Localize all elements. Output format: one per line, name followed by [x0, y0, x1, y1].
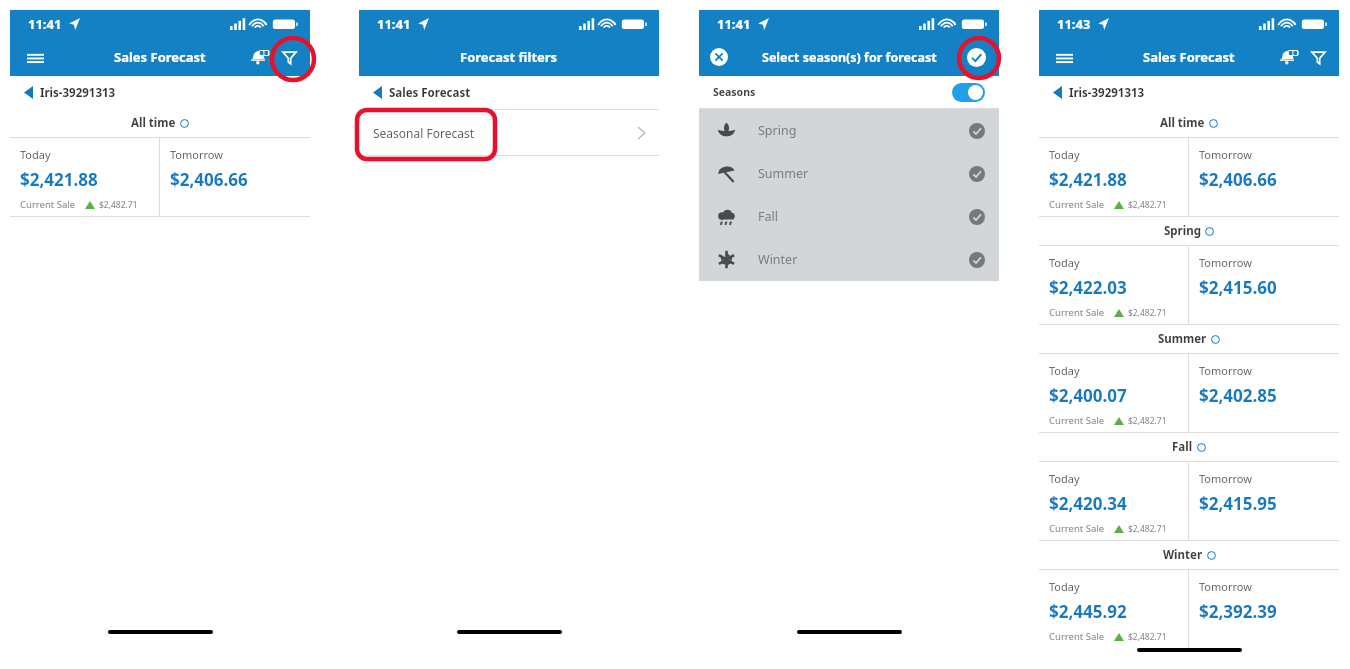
button[interactable]: Help	[1205, 227, 1214, 236]
staticText: Fall	[758, 208, 778, 225]
button[interactable]: Today	[1039, 246, 1188, 324]
staticText: $2,421.88	[20, 168, 98, 191]
button[interactable]: Seasons	[699, 76, 999, 108]
staticText: Seasonal Forecast	[373, 125, 475, 141]
staticText: 11:41	[717, 15, 751, 33]
staticText: Tomorrow	[170, 147, 223, 162]
staticText: Seasons	[713, 85, 756, 99]
button[interactable]: Winter	[699, 238, 999, 281]
button[interactable]: Spring	[699, 109, 999, 152]
staticText: Forecast filters	[460, 48, 558, 66]
staticText: Current Sale	[1049, 630, 1105, 643]
staticText: Sales Forecast	[1143, 48, 1235, 66]
staticText: $2,482.71	[1128, 523, 1167, 535]
staticText: $2,445.92	[1049, 600, 1127, 623]
staticText: 11:41	[377, 15, 411, 33]
staticText: $2,400.07	[1049, 384, 1127, 407]
button[interactable]: Help	[1211, 335, 1220, 344]
staticText: Tomorrow	[1199, 147, 1252, 162]
button[interactable]: Notifications	[244, 42, 274, 72]
staticText: Iris-39291313	[40, 85, 116, 101]
button[interactable]: Help	[1207, 551, 1216, 560]
staticText: Fall	[1172, 439, 1193, 455]
staticText: Select season(s) for forecast	[762, 49, 937, 66]
button[interactable]: Summer	[699, 152, 999, 195]
button[interactable]: Today	[1039, 570, 1188, 648]
staticText: All time	[1160, 115, 1205, 131]
button[interactable]: Menu	[18, 40, 52, 74]
button[interactable]: Today	[1039, 354, 1188, 432]
button[interactable]: Close	[704, 42, 734, 72]
staticText: 11:41	[28, 15, 62, 33]
staticText: $2,402.85	[1199, 384, 1277, 407]
staticText: $2,415.95	[1199, 492, 1277, 515]
staticText: Sales Forecast	[114, 48, 206, 66]
button[interactable]	[952, 83, 985, 102]
staticText: Today	[1049, 579, 1080, 594]
staticText: Current Sale	[1049, 414, 1105, 427]
staticText: Summer	[1158, 331, 1207, 347]
staticText: Sales Forecast	[389, 85, 471, 101]
staticText: Current Sale	[1049, 306, 1105, 319]
staticText: Current Sale	[1049, 198, 1105, 211]
staticText: Tomorrow	[1199, 471, 1252, 486]
button[interactable]: Tomorrow	[1189, 462, 1339, 540]
staticText: Today	[1049, 255, 1080, 270]
staticText: Today	[1049, 471, 1080, 486]
button[interactable]: Sales Forecast	[359, 76, 659, 109]
button[interactable]: Today	[1039, 462, 1188, 540]
staticText: Summer	[758, 165, 809, 182]
button[interactable]: Tomorrow	[1189, 138, 1339, 216]
staticText: $2,415.60	[1199, 276, 1277, 299]
button[interactable]: Help	[1197, 443, 1206, 452]
button[interactable]: Tomorrow	[1189, 246, 1339, 324]
button[interactable]: Menu	[1047, 40, 1081, 74]
button[interactable]: Today	[1039, 138, 1188, 216]
staticText: Winter	[1163, 547, 1203, 563]
staticText: Spring	[1164, 223, 1201, 239]
button[interactable]: Confirm	[961, 42, 991, 72]
button[interactable]: Filter	[1303, 42, 1333, 72]
button[interactable]: Help	[180, 119, 189, 128]
button[interactable]: Iris-39291313	[10, 76, 310, 109]
button[interactable]: Fall	[699, 195, 999, 238]
button[interactable]: Iris-39291313	[1039, 76, 1339, 109]
staticText: $2,421.88	[1049, 168, 1127, 191]
button[interactable]: Help	[1209, 119, 1218, 128]
staticText: $2,420.34	[1049, 492, 1127, 515]
staticText: Current Sale	[20, 198, 76, 211]
staticText: $2,482.71	[99, 199, 138, 211]
button[interactable]: Tomorrow	[160, 138, 310, 216]
staticText: $2,406.66	[1199, 168, 1277, 191]
staticText: Tomorrow	[1199, 255, 1252, 270]
staticText: 11:43	[1057, 15, 1091, 33]
staticText: Spring	[758, 122, 797, 139]
button[interactable]: Tomorrow	[1189, 354, 1339, 432]
button[interactable]: Seasonal Forecast	[359, 110, 659, 155]
staticText: Today	[1049, 363, 1080, 378]
button[interactable]: Tomorrow	[1189, 570, 1339, 648]
button[interactable]: Notifications	[1273, 42, 1303, 72]
staticText: Today	[1049, 147, 1080, 162]
staticText: $2,406.66	[170, 168, 248, 191]
button[interactable]: Today	[10, 138, 159, 216]
staticText: Iris-39291313	[1069, 85, 1145, 101]
staticText: Tomorrow	[1199, 579, 1252, 594]
staticText: $2,482.71	[1128, 631, 1167, 643]
staticText: $2,482.71	[1128, 199, 1167, 211]
staticText: $2,482.71	[1128, 307, 1167, 319]
staticText: Winter	[758, 251, 798, 268]
staticText: $2,422.03	[1049, 276, 1127, 299]
staticText: All time	[131, 115, 176, 131]
staticText: $2,482.71	[1128, 415, 1167, 427]
staticText: Tomorrow	[1199, 363, 1252, 378]
staticText: $2,392.39	[1199, 600, 1277, 623]
staticText: Current Sale	[1049, 522, 1105, 535]
button[interactable]: Filter	[274, 42, 304, 72]
staticText: Today	[20, 147, 51, 162]
